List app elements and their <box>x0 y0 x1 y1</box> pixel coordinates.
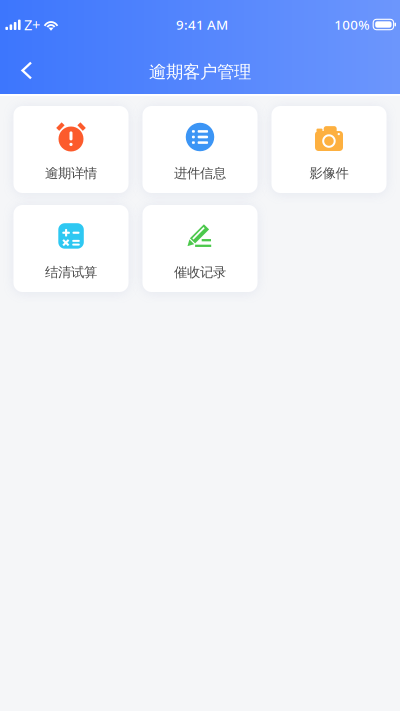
button[interactable]: 影像件 <box>271 106 386 193</box>
staticText: Z+ <box>24 15 40 34</box>
staticText: 逾期详情 <box>45 165 97 181</box>
staticText: 结清试算 <box>45 264 97 280</box>
button[interactable]: 结清试算 <box>13 205 128 292</box>
button[interactable]: Back <box>0 48 49 92</box>
staticText: 催收记录 <box>174 264 226 280</box>
button[interactable]: 催收记录 <box>142 205 257 292</box>
staticText: 逾期客户管理 <box>149 61 251 83</box>
staticText: 进件信息 <box>174 165 226 181</box>
staticText: 影像件 <box>309 165 348 181</box>
button[interactable]: 进件信息 <box>142 106 257 193</box>
button[interactable]: 逾期详情 <box>13 106 128 193</box>
staticText: 9:41 AM <box>176 16 228 33</box>
staticText: 100% <box>334 16 369 33</box>
